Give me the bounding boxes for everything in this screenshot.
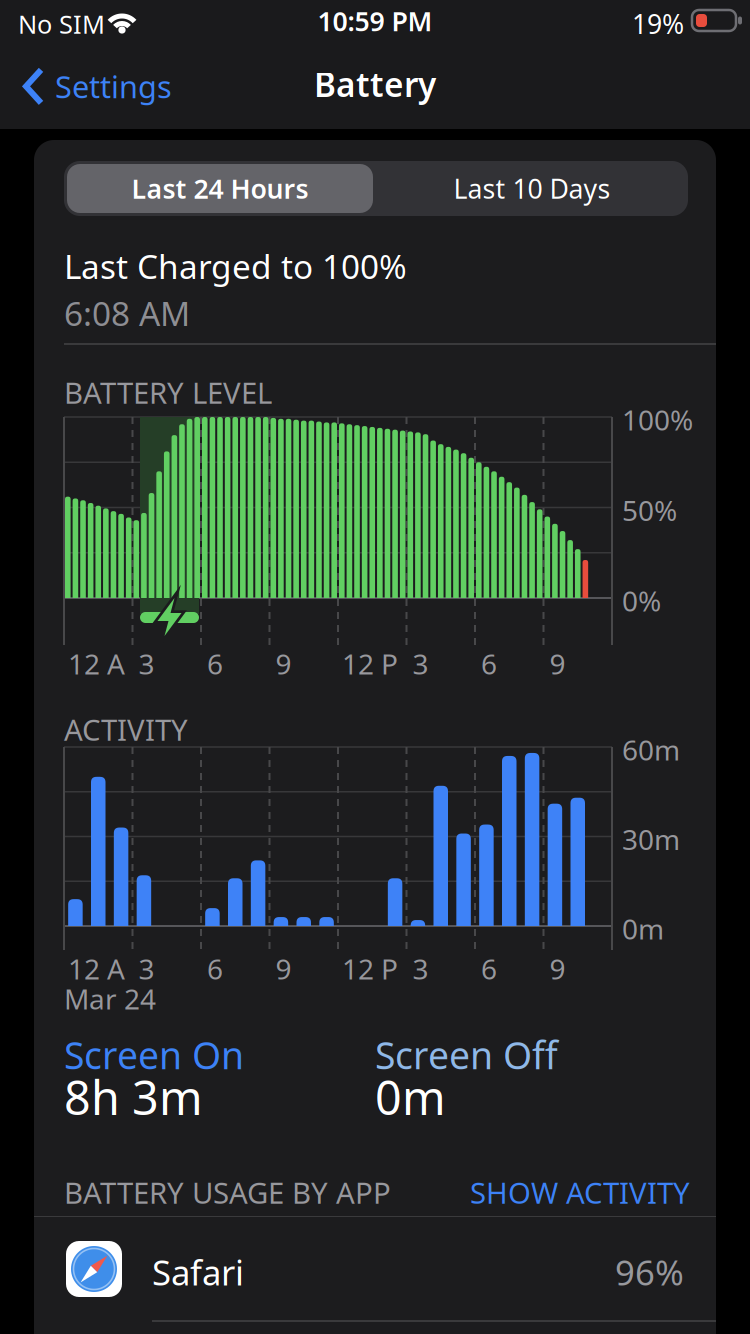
staticText: Last 10 Days	[453, 171, 610, 206]
staticText: 0m	[375, 1066, 446, 1128]
staticText: 6	[207, 645, 223, 682]
staticText: 96%	[615, 1249, 684, 1295]
staticText: 3	[412, 645, 428, 682]
staticText: 9	[549, 950, 565, 987]
staticText: Settings	[55, 66, 172, 107]
staticText: 50%	[622, 491, 677, 529]
staticText: 19%	[632, 6, 684, 41]
button[interactable]: Last 24 Hours	[67, 164, 373, 213]
staticText: 12 A	[68, 950, 125, 987]
staticText: 12 A	[68, 645, 125, 682]
staticText: 12 P	[342, 645, 398, 682]
staticText: 10:59 PM	[317, 3, 432, 39]
staticText: 6	[207, 950, 223, 987]
staticText: Safari	[152, 1249, 244, 1295]
staticText: 9	[275, 645, 291, 682]
staticText: Last Charged to 100%	[64, 244, 407, 288]
button[interactable]: Back to Settings	[24, 66, 172, 107]
staticText: 8h 3m	[64, 1066, 203, 1128]
staticText: 30m	[622, 820, 680, 858]
staticText: 3	[138, 645, 154, 682]
staticText: Screen Off	[375, 1030, 558, 1080]
staticText: 3	[138, 950, 154, 987]
staticText: Battery	[314, 62, 436, 106]
staticText: 6	[481, 645, 497, 682]
staticText: 9	[549, 645, 565, 682]
staticText: No SIM	[18, 7, 105, 41]
staticText: 6:08 AM	[64, 291, 190, 335]
button[interactable]: Safari	[34, 1217, 750, 1334]
staticText: 0m	[622, 910, 664, 947]
staticText: 9	[275, 950, 291, 987]
staticText: Mar 24	[64, 980, 156, 1017]
staticText: 6	[481, 950, 497, 987]
staticText: 0%	[622, 582, 661, 619]
staticText: 60m	[622, 731, 680, 768]
staticText: 12 P	[342, 950, 398, 987]
staticText: 3	[412, 950, 428, 987]
button[interactable]: SHOW ACTIVITY	[390, 1173, 690, 1212]
staticText: ACTIVITY	[64, 710, 188, 749]
staticText: Last 24 Hours	[131, 171, 308, 206]
staticText: BATTERY USAGE BY APP	[64, 1173, 391, 1212]
staticText: SHOW ACTIVITY	[470, 1173, 690, 1212]
staticText: 100%	[622, 401, 693, 438]
button[interactable]: Last 10 Days	[376, 161, 688, 216]
staticText: BATTERY LEVEL	[64, 373, 272, 412]
staticText: Screen On	[64, 1030, 244, 1080]
